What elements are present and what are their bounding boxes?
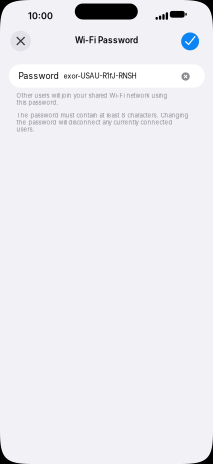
button[interactable]: Password	[9, 64, 205, 88]
button[interactable]: Done	[181, 32, 199, 50]
staticText: Wi-Fi Password	[75, 35, 138, 45]
staticText: 10:00	[28, 11, 53, 21]
staticText: Other users will join your shared Wi-Fi …	[16, 92, 167, 99]
staticText: the password will disconnect any current…	[16, 119, 172, 126]
button[interactable]: Clear text	[181, 72, 190, 81]
staticText: Password	[18, 71, 58, 81]
staticText: The password must contain at least 8 cha…	[16, 112, 188, 119]
staticText: users.	[16, 126, 34, 133]
button[interactable]: Close	[10, 31, 31, 51]
staticText: this password.	[16, 99, 58, 106]
staticText: exor-USAU-R1fJ-RNSH	[63, 72, 136, 80]
